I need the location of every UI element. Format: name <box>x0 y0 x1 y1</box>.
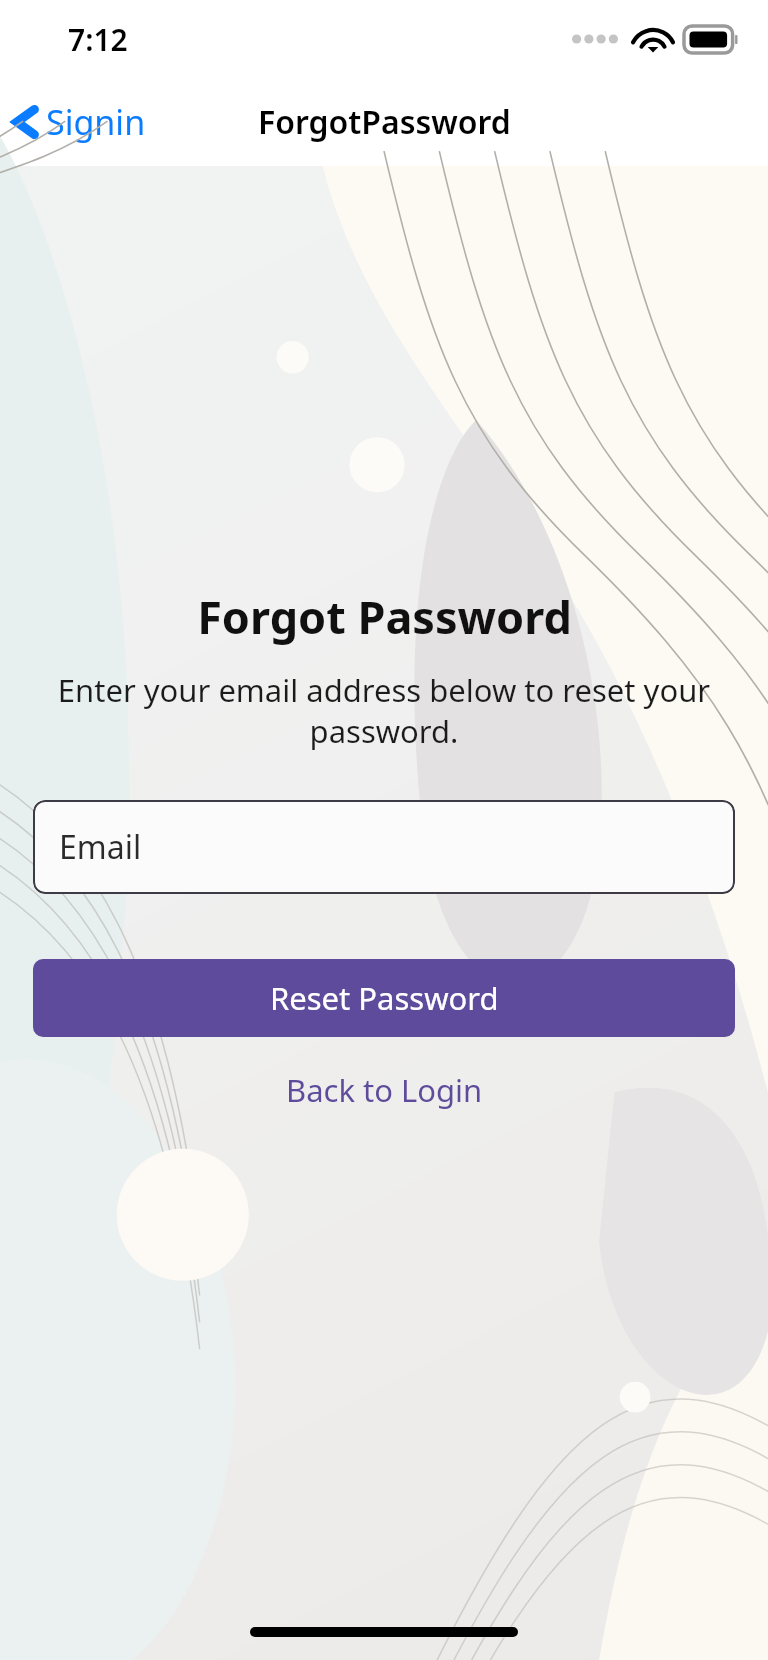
staticText: Signin <box>46 99 146 145</box>
button[interactable]: Back to Login <box>262 1061 507 1119</box>
staticText: Back to Login <box>286 1069 483 1111</box>
staticText: ForgotPassword <box>258 100 511 144</box>
staticText: Reset Password <box>270 977 499 1019</box>
button[interactable]: Email <box>33 800 735 894</box>
staticText: Enter your email address below to reset … <box>52 669 716 752</box>
button[interactable]: Reset Password <box>33 959 735 1037</box>
staticText: 7:12 <box>68 19 128 60</box>
staticText: Forgot Password <box>197 586 572 647</box>
button[interactable]: Signin <box>0 89 166 155</box>
staticText: Email <box>59 825 142 869</box>
